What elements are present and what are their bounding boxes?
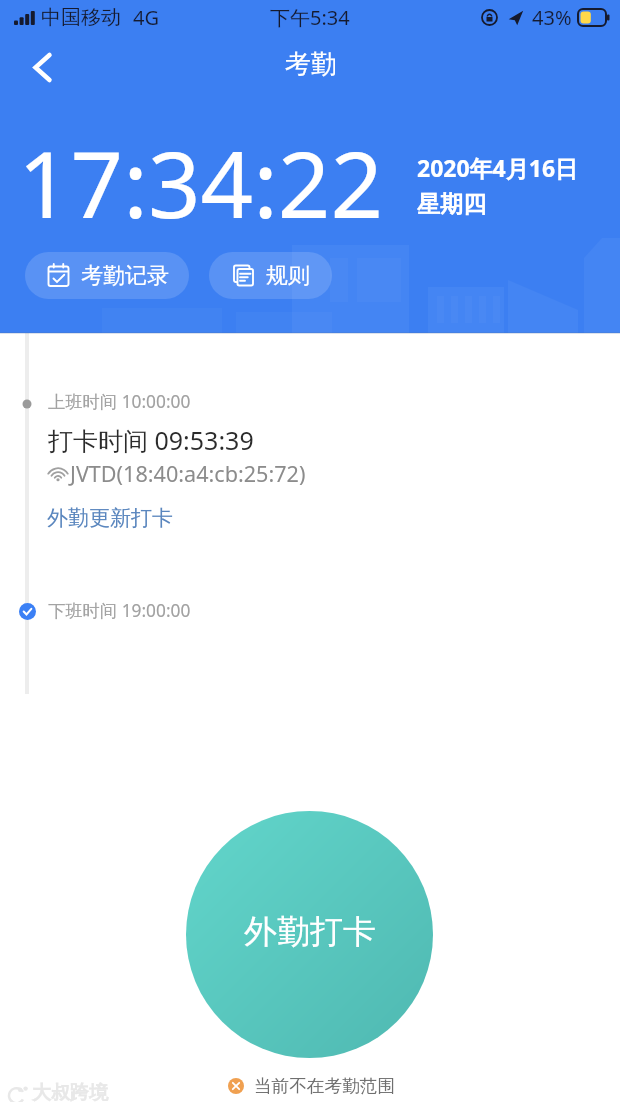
staticText: 43% bbox=[532, 4, 572, 31]
button[interactable]: Back bbox=[20, 45, 66, 91]
staticText: 4G bbox=[133, 4, 159, 31]
button[interactable]: 外勤更新打卡 bbox=[47, 505, 173, 531]
staticText: 外勤打卡 bbox=[244, 911, 376, 953]
staticText: 打卡时间 09:53:39 bbox=[48, 423, 254, 457]
button[interactable]: 考勤记录 bbox=[25, 252, 189, 299]
staticText: 上班时间 10:00:00 bbox=[48, 390, 191, 414]
staticText: 星期四 bbox=[417, 190, 486, 219]
staticText: 考勤 bbox=[285, 48, 337, 81]
staticText: 下班时间 19:00:00 bbox=[48, 599, 191, 623]
staticText: 考勤记录 bbox=[81, 262, 169, 290]
staticText: 当前不在考勤范围 bbox=[254, 1075, 395, 1097]
button[interactable]: 规则 bbox=[209, 252, 332, 299]
staticText: 规则 bbox=[266, 262, 310, 290]
staticText: 中国移动 bbox=[41, 5, 121, 30]
staticText: 下午5:34 bbox=[270, 4, 350, 31]
staticText: 大叔跨境 bbox=[32, 1081, 108, 1102]
button[interactable]: 外勤打卡 bbox=[186, 811, 433, 1058]
staticText: JVTD(18:40:a4:cb:25:72) bbox=[70, 459, 306, 488]
staticText: 17:34:22 bbox=[18, 120, 384, 245]
staticText: 2020年4月16日 bbox=[417, 152, 579, 183]
staticText: 外勤更新打卡 bbox=[47, 505, 173, 531]
